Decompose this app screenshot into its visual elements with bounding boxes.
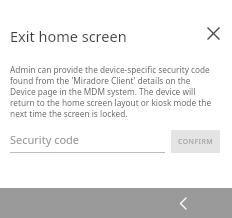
staticText: Admin can provide the device-specific se… — [10, 64, 215, 119]
button[interactable]: CONFIRM — [171, 130, 220, 153]
staticText: Exit home screen — [10, 26, 127, 46]
button[interactable]: Back — [171, 191, 195, 215]
staticText: CONFIRM — [178, 137, 214, 147]
button[interactable]: Close — [201, 21, 225, 45]
staticText: Security code — [10, 132, 80, 147]
button[interactable]: Security code — [10, 132, 165, 148]
